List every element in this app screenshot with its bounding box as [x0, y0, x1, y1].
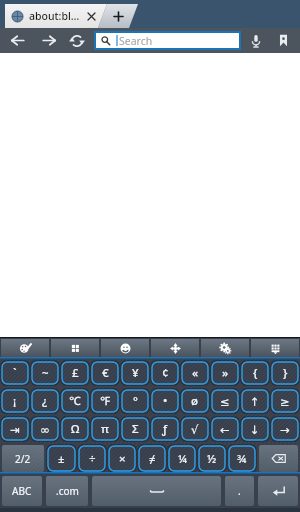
- button[interactable]: ¿: [32, 390, 58, 412]
- button[interactable]: .com: [46, 476, 88, 506]
- staticText: ≥: [280, 395, 290, 408]
- staticText: ABC: [12, 484, 32, 498]
- staticText: ×: [119, 451, 126, 467]
- button[interactable]: ABC: [2, 476, 42, 506]
- button[interactable]: about:bl…: [5, 4, 107, 28]
- button[interactable]: Hide keyboard: [251, 339, 299, 357]
- button[interactable]: €: [92, 362, 118, 384]
- button[interactable]: Ω: [62, 418, 88, 440]
- button[interactable]: «: [182, 362, 208, 384]
- button[interactable]: .: [225, 476, 254, 506]
- button[interactable]: Voice search: [243, 28, 269, 53]
- staticText: ~: [42, 365, 49, 381]
- button[interactable]: ↑: [242, 390, 268, 412]
- staticText: ¡: [13, 393, 17, 409]
- button[interactable]: Enter: [258, 476, 298, 506]
- staticText: {: [253, 365, 258, 381]
- button[interactable]: Emoji: [101, 339, 149, 357]
- staticText: ℃: [69, 393, 81, 409]
- button[interactable]: `: [2, 362, 28, 384]
- button[interactable]: ≠: [139, 446, 165, 471]
- button[interactable]: ↓: [242, 418, 268, 440]
- staticText: √: [191, 423, 199, 436]
- staticText: ≤: [220, 395, 230, 408]
- button[interactable]: Settings: [201, 339, 249, 357]
- staticText: ↓: [250, 423, 260, 436]
- button[interactable]: Layouts: [51, 339, 99, 357]
- button[interactable]: ø: [182, 390, 208, 412]
- button[interactable]: •: [152, 390, 178, 412]
- staticText: ←: [220, 423, 230, 436]
- staticText: ¼: [178, 451, 187, 467]
- staticText: π: [101, 421, 109, 437]
- button[interactable]: New tab: [98, 4, 138, 28]
- staticText: ⇥: [10, 423, 20, 436]
- button[interactable]: Theme: [1, 339, 49, 357]
- staticText: ℉: [100, 393, 111, 409]
- button[interactable]: →: [272, 418, 298, 440]
- button[interactable]: }: [272, 362, 298, 384]
- button[interactable]: »: [212, 362, 238, 384]
- staticText: «: [192, 365, 199, 381]
- staticText: ∞: [40, 423, 50, 436]
- button[interactable]: ½: [199, 446, 225, 471]
- button[interactable]: ⇥: [2, 418, 28, 440]
- button[interactable]: °: [122, 390, 148, 412]
- staticText: ¾: [237, 451, 247, 467]
- button[interactable]: ¥: [122, 362, 148, 384]
- button[interactable]: Space: [92, 476, 221, 506]
- staticText: ¢: [162, 365, 169, 381]
- button[interactable]: ¡: [2, 390, 28, 412]
- staticText: .com: [56, 484, 79, 498]
- button[interactable]: Forward: [34, 28, 64, 53]
- staticText: ±: [58, 451, 65, 467]
- staticText: →: [280, 423, 290, 436]
- button[interactable]: ~: [32, 362, 58, 384]
- button[interactable]: Bookmarks: [270, 28, 296, 53]
- button[interactable]: Move: [151, 339, 199, 357]
- staticText: .: [238, 484, 241, 498]
- button[interactable]: Search: [96, 33, 239, 48]
- button[interactable]: ±: [48, 446, 75, 471]
- staticText: £: [72, 365, 79, 381]
- staticText: ½: [207, 451, 217, 467]
- button[interactable]: π: [92, 418, 118, 440]
- button[interactable]: £: [62, 362, 88, 384]
- staticText: 2/2: [15, 452, 31, 466]
- button[interactable]: √: [182, 418, 208, 440]
- staticText: Ω: [71, 421, 80, 437]
- button[interactable]: Σ: [122, 418, 148, 440]
- button[interactable]: ¼: [169, 446, 195, 471]
- button[interactable]: ∞: [32, 418, 58, 440]
- button[interactable]: ←: [212, 418, 238, 440]
- button[interactable]: ¢: [152, 362, 178, 384]
- button[interactable]: ÷: [79, 446, 105, 471]
- button[interactable]: ¾: [229, 446, 255, 471]
- button[interactable]: ℉: [92, 390, 118, 412]
- button[interactable]: Close tab: [85, 10, 98, 23]
- staticText: ø: [191, 393, 199, 409]
- staticText: ¿: [42, 393, 48, 409]
- staticText: °: [133, 393, 138, 409]
- staticText: }: [283, 365, 288, 381]
- button[interactable]: Reload: [63, 28, 91, 53]
- staticText: »: [222, 365, 229, 381]
- staticText: ÷: [89, 451, 96, 467]
- button[interactable]: Back: [2, 28, 32, 53]
- staticText: Search: [119, 34, 153, 48]
- button[interactable]: Backspace: [259, 445, 298, 472]
- staticText: ƒ: [162, 421, 168, 437]
- button[interactable]: ℃: [62, 390, 88, 412]
- button[interactable]: 2/2: [2, 445, 44, 472]
- staticText: Σ: [132, 421, 139, 437]
- staticText: €: [102, 365, 109, 381]
- staticText: ≠: [149, 451, 156, 467]
- button[interactable]: ≤: [212, 390, 238, 412]
- button[interactable]: {: [242, 362, 268, 384]
- button[interactable]: ƒ: [152, 418, 178, 440]
- staticText: ↑: [250, 395, 260, 408]
- button[interactable]: ×: [109, 446, 135, 471]
- button[interactable]: ≥: [272, 390, 298, 412]
- staticText: about:bl…: [29, 9, 80, 23]
- staticText: ¥: [132, 365, 139, 381]
